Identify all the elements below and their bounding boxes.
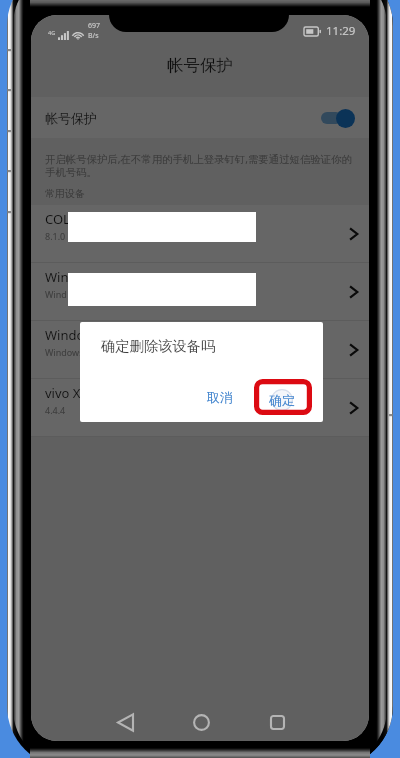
staticText: Win bbox=[45, 268, 69, 286]
staticText: 697 bbox=[88, 21, 101, 31]
button[interactable]: Windo bbox=[31, 321, 369, 379]
button[interactable]: Home bbox=[180, 701, 222, 741]
button[interactable]: Recent apps bbox=[256, 701, 298, 741]
button[interactable]: COL bbox=[31, 205, 369, 263]
staticText: B/s bbox=[88, 31, 99, 41]
button[interactable]: 帐号保护 bbox=[31, 97, 369, 138]
staticText: 开启帐号保护后,在不常用的手机上登录钉钉,需要通过短信验证你的手机号码。 bbox=[45, 152, 357, 179]
staticText: 11:29 bbox=[326, 23, 356, 39]
button[interactable]: 确定 bbox=[258, 378, 306, 422]
button[interactable]: Back bbox=[104, 701, 146, 741]
staticText: 取消 bbox=[207, 389, 233, 405]
staticText: Windo bbox=[45, 326, 85, 344]
staticText: 帐号保护 bbox=[167, 55, 233, 76]
button[interactable]: 取消 bbox=[196, 378, 244, 416]
button[interactable]: Win bbox=[31, 263, 369, 321]
staticText: 4.4.4 bbox=[45, 404, 66, 416]
staticText: 常用设备 bbox=[45, 187, 85, 200]
staticText: COL bbox=[45, 210, 70, 228]
staticText: vivo X9 bbox=[45, 384, 88, 402]
staticText: 4G bbox=[48, 29, 56, 36]
staticText: Wind bbox=[45, 288, 67, 300]
staticText: 8.1.0 bbox=[45, 230, 66, 242]
staticText: Windows bbox=[45, 346, 84, 358]
staticText: 确定 bbox=[269, 392, 295, 408]
staticText: 确定删除该设备吗 bbox=[101, 337, 216, 355]
button[interactable]: vivo X9 bbox=[31, 379, 369, 437]
staticText: 帐号保护 bbox=[45, 110, 97, 126]
